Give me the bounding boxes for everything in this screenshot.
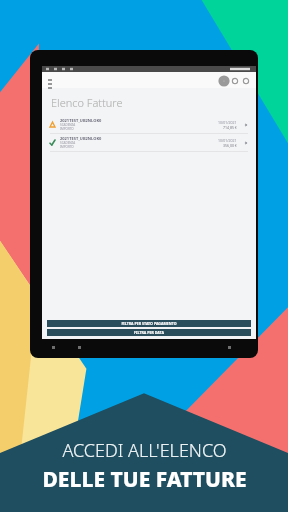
- button[interactable]: FILTRA PER STATO PAGAMENTO: [47, 320, 251, 327]
- button[interactable]: 2021TEST_UB2NLOK0: [42, 134, 256, 151]
- staticText: ACCEDI ALL'ELENCO: [62, 438, 227, 463]
- button[interactable]: Help: [229, 75, 240, 86]
- button[interactable]: Home: [75, 343, 83, 351]
- staticText: 10/01/2021: [218, 138, 237, 143]
- staticText: IMPORTO: [60, 127, 74, 131]
- button[interactable]: Menu: [47, 77, 53, 83]
- staticText: Elenco Fatture: [51, 95, 123, 110]
- staticText: 10/01/2021: [218, 120, 237, 125]
- staticText: FILTRA PER DATA: [134, 330, 164, 335]
- staticText: FILTRA PER STATO PAGAMENTO: [121, 321, 177, 326]
- staticText: SCADENZA: [60, 123, 76, 127]
- staticText: 714,85 €: [223, 125, 237, 130]
- staticText: SCADENZA: [60, 141, 76, 145]
- button[interactable]: Search: [218, 75, 229, 86]
- button[interactable]: Back: [49, 343, 57, 351]
- button[interactable]: Recents: [225, 343, 233, 351]
- button[interactable]: 2021TEST_UB2NLOK0: [42, 116, 256, 133]
- staticText: 2021TEST_UB2NLOK0: [60, 118, 102, 123]
- button[interactable]: FILTRA PER DATA: [47, 329, 251, 336]
- staticText: DELLE TUE FATTURE: [42, 465, 247, 494]
- staticText: 2021TEST_UB2NLOK0: [60, 136, 102, 141]
- staticText: 356,00 €: [223, 143, 237, 148]
- staticText: IMPORTO: [60, 145, 74, 149]
- button[interactable]: Settings: [240, 75, 251, 86]
